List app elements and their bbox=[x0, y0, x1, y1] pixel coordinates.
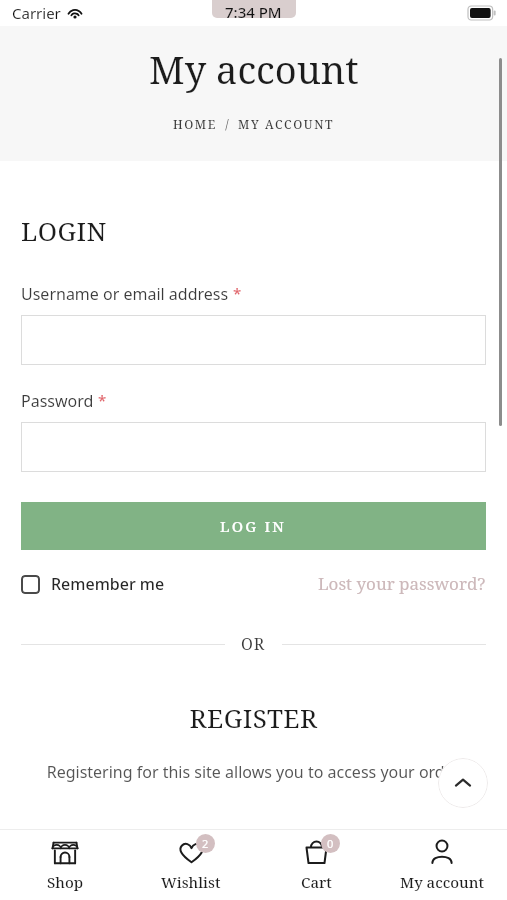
button[interactable]: 0 bbox=[256, 833, 376, 896]
button[interactable]: My account bbox=[382, 833, 502, 896]
button[interactable]: LOG IN bbox=[21, 502, 486, 550]
staticText: My account bbox=[400, 872, 484, 892]
staticText: * bbox=[233, 283, 242, 303]
staticText: 0 bbox=[327, 836, 334, 851]
button[interactable]: 2 bbox=[131, 833, 251, 896]
staticText: LOGIN bbox=[21, 213, 107, 248]
staticText: Wishlist bbox=[161, 872, 221, 892]
staticText: Carrier bbox=[12, 3, 61, 23]
staticText: OR bbox=[241, 633, 266, 655]
staticText: Shop bbox=[47, 872, 84, 892]
staticText: 7:34 PM bbox=[225, 2, 282, 22]
staticText: Cart bbox=[301, 872, 332, 892]
button[interactable]: Lost your password? bbox=[318, 572, 486, 595]
button[interactable]: HOME bbox=[173, 116, 217, 132]
staticText: Password bbox=[21, 390, 94, 412]
staticText: Registering for this site allows you to … bbox=[21, 761, 486, 783]
button[interactable]: MY ACCOUNT bbox=[238, 116, 335, 132]
button[interactable] bbox=[21, 422, 486, 472]
staticText: / bbox=[217, 116, 238, 132]
button[interactable] bbox=[21, 315, 486, 365]
button[interactable]: Scroll to top bbox=[438, 758, 488, 808]
staticText: * bbox=[98, 390, 107, 410]
staticText: Remember me bbox=[51, 573, 165, 595]
button[interactable]: Remember me bbox=[21, 573, 165, 595]
staticText: My account bbox=[149, 43, 359, 95]
staticText: Username or email address bbox=[21, 283, 229, 305]
button[interactable]: Shop bbox=[5, 833, 125, 896]
staticText: LOG IN bbox=[220, 516, 287, 536]
staticText: 2 bbox=[202, 836, 209, 851]
staticText: REGISTER bbox=[21, 700, 486, 735]
